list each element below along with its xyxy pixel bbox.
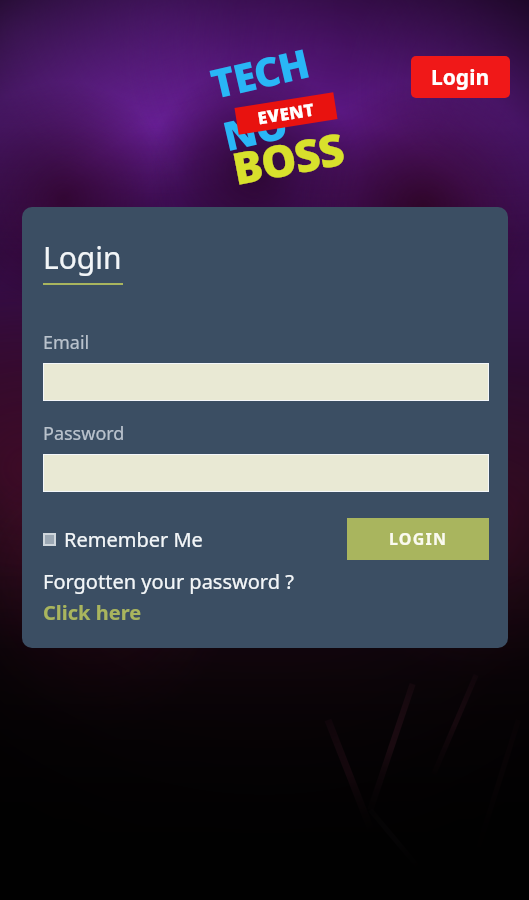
staticText: Email	[43, 330, 90, 355]
button[interactable]: Click here	[43, 599, 142, 626]
staticText: Click here	[43, 599, 142, 626]
staticText: Login	[43, 237, 122, 278]
staticText: BOSS	[227, 118, 349, 198]
staticText: LOGIN	[389, 528, 448, 550]
button[interactable]: Login	[411, 56, 510, 98]
button[interactable]: LOGIN	[347, 518, 489, 560]
staticText: Login	[431, 63, 490, 92]
staticText: EVENT	[256, 98, 316, 129]
staticText: Remember Me	[64, 526, 203, 553]
staticText: TECHNO	[205, 30, 349, 162]
staticText: Forgotten your password ?	[43, 568, 294, 595]
button[interactable]: Remember Me	[43, 526, 203, 553]
staticText: Password	[43, 421, 125, 446]
